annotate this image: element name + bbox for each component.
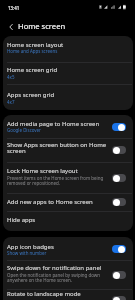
button[interactable]: Home screen xyxy=(18,21,66,31)
button[interactable]: Rotate to landscape mode xyxy=(112,296,126,300)
staticText: Google Discover xyxy=(7,127,41,133)
staticText: 4x5 xyxy=(7,74,15,80)
staticText: Add media page to Home screen xyxy=(7,120,100,128)
button[interactable]: Show Apps screen button on Home screen xyxy=(112,146,126,154)
button[interactable]: Lock Home screen layout xyxy=(3,162,133,192)
button[interactable]: Lock Home screen layout xyxy=(112,174,126,182)
button[interactable]: Add media page to Home screen xyxy=(112,123,126,131)
button[interactable]: Add new apps to Home screen xyxy=(3,193,133,211)
button[interactable]: Hide apps xyxy=(3,211,133,231)
staticText: Home screen layout xyxy=(7,41,64,49)
staticText: Hide apps xyxy=(7,216,36,224)
button[interactable]: Swipe down for notification panel xyxy=(3,260,133,290)
staticText: Rotate to landscape mode xyxy=(7,290,81,298)
staticText: Prevent items on the Home screen from be… xyxy=(7,175,104,181)
button[interactable]: Navigate up xyxy=(4,20,18,34)
button[interactable]: Show Apps screen button on Home screen xyxy=(3,138,133,162)
staticText: anywhere on the Home screen. xyxy=(7,277,72,283)
button[interactable]: Add media page to Home screen xyxy=(3,115,133,138)
button[interactable]: Add new apps to Home screen xyxy=(112,198,126,206)
staticText: App icon badges xyxy=(7,243,54,251)
button[interactable]: Rotate to landscape mode xyxy=(3,289,133,300)
staticText: 13:41 xyxy=(8,5,20,11)
staticText: screen xyxy=(7,147,26,155)
staticText: removed or repositioned. xyxy=(7,180,60,186)
staticText: Show with number xyxy=(7,250,47,256)
button[interactable]: Apps screen grid xyxy=(3,84,133,110)
staticText: 4x7 xyxy=(7,99,15,105)
button[interactable]: Home screen layout xyxy=(3,36,133,62)
staticText: Open the notification panel by swiping d… xyxy=(7,272,101,278)
button[interactable]: App icon badges xyxy=(112,245,126,253)
button[interactable]: Home screen grid xyxy=(3,62,133,84)
staticText: Lock Home screen layout xyxy=(7,167,78,175)
staticText: Apps screen grid xyxy=(7,91,55,99)
staticText: Add new apps to Home screen xyxy=(7,198,93,206)
button[interactable]: App icon badges xyxy=(3,237,133,260)
staticText: Show Apps screen button on Home xyxy=(7,141,107,149)
button[interactable]: Swipe down for notification panel xyxy=(112,271,126,279)
staticText: Home and Apps screens xyxy=(7,48,58,54)
staticText: Swipe down for notification panel xyxy=(7,264,102,272)
staticText: Home screen grid xyxy=(7,66,58,74)
